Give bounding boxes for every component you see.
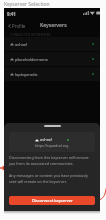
staticText: 9:41 xyxy=(7,11,16,17)
staticText: https://squadcal.org xyxy=(35,143,69,148)
button[interactable]: ashraf xyxy=(10,37,94,51)
staticText: Disconnect keyserver xyxy=(32,198,73,203)
staticText: CONNECTED KEYSERVERS xyxy=(10,32,51,37)
button[interactable]: Disconnect keyserver xyxy=(9,196,95,205)
staticText: laptopmetis xyxy=(15,72,38,77)
button[interactable]: Profile xyxy=(7,22,26,30)
staticText: Disconnecting from this keyserver will r… xyxy=(9,155,96,167)
staticText: Keyserver Selection xyxy=(4,1,50,8)
other: Status icons xyxy=(83,11,98,15)
staticText: ashraf xyxy=(40,137,52,142)
staticText: Profile xyxy=(12,23,26,29)
staticText: Any messages or content you have previou… xyxy=(9,173,96,185)
staticText: placeholdername xyxy=(15,57,48,62)
button[interactable]: ashraf xyxy=(9,132,95,152)
button[interactable]: placeholdername xyxy=(10,52,94,66)
staticText: Keyservers xyxy=(40,22,67,29)
button[interactable]: laptopmetis xyxy=(10,67,94,81)
staticText: ashraf xyxy=(15,42,27,47)
